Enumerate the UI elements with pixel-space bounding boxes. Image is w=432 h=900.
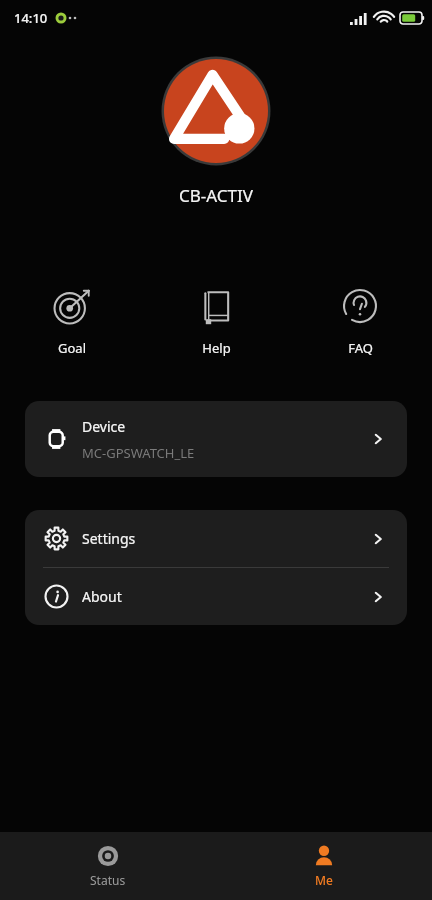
button[interactable]: Device: [25, 401, 407, 477]
staticText: 14:10: [14, 9, 48, 27]
button[interactable]: Status: [0, 832, 216, 900]
button[interactable]: Settings: [25, 510, 407, 567]
button[interactable]: Me: [216, 832, 432, 900]
staticText: MC-GPSWATCH_LE: [82, 444, 195, 462]
staticText: Help: [202, 339, 231, 357]
staticText: FAQ: [348, 339, 373, 357]
staticText: Settings: [82, 529, 136, 548]
button[interactable]: About: [25, 568, 407, 625]
staticText: Me: [315, 872, 333, 888]
button[interactable]: Help: [170, 285, 262, 359]
staticText: Device: [82, 417, 126, 436]
staticText: About: [82, 587, 122, 606]
button[interactable]: Goal: [26, 285, 118, 359]
staticText: CB-ACTIV: [0, 184, 432, 207]
button[interactable]: FAQ: [314, 285, 406, 359]
staticText: Goal: [58, 339, 86, 357]
staticText: Status: [90, 872, 126, 888]
